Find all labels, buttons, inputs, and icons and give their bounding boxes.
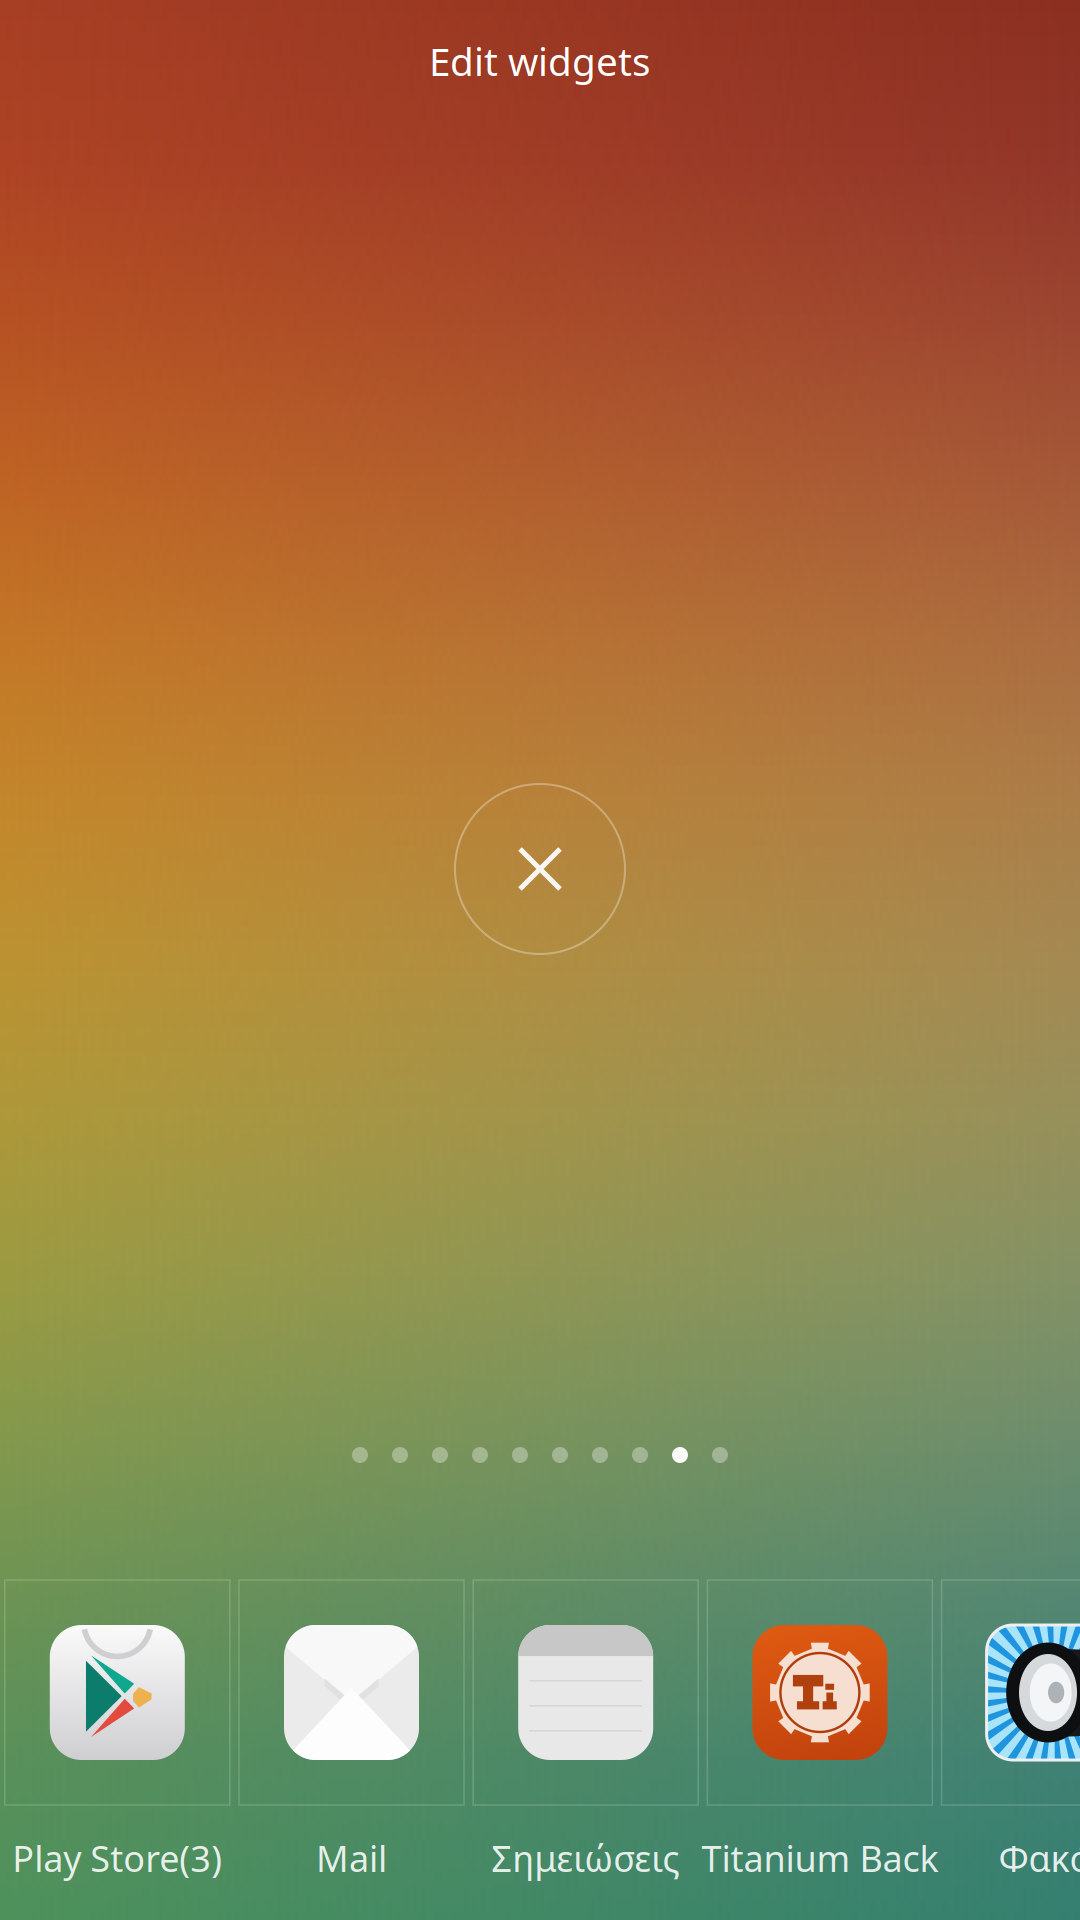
staticText: Σημειώσεις bbox=[491, 1834, 680, 1882]
button[interactable]: Edit widgets bbox=[0, 0, 1080, 122]
staticText: Titanium Back bbox=[701, 1834, 938, 1882]
staticText: Play Store(3) bbox=[12, 1834, 222, 1882]
button[interactable]: Mail bbox=[234, 1580, 469, 1920]
staticText: Mail bbox=[316, 1834, 387, 1882]
staticText: Edit widgets bbox=[429, 35, 651, 87]
button[interactable]: Titanium Back bbox=[703, 1580, 937, 1920]
button[interactable]: Σημειώσεις bbox=[469, 1580, 703, 1920]
button[interactable]: Φακός bbox=[937, 1580, 1080, 1920]
button[interactable]: Close widget editor bbox=[425, 754, 655, 984]
staticText: Φακός bbox=[999, 1834, 1080, 1882]
button[interactable]: Play Store(3) bbox=[0, 1580, 234, 1920]
